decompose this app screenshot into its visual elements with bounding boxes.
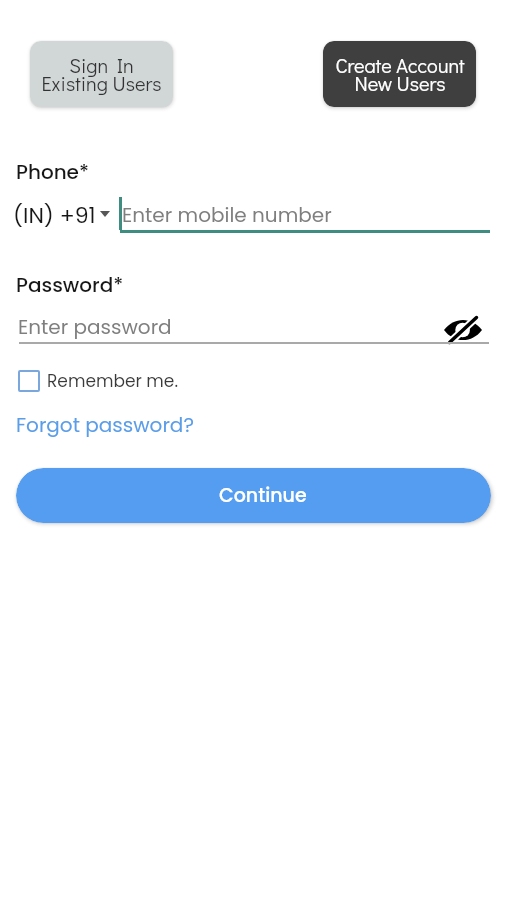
staticText: Sign In Existing Users <box>41 52 162 97</box>
other: Select country code <box>100 211 110 217</box>
button[interactable]: Forgot password? <box>16 411 194 439</box>
staticText: (IN) +91 <box>13 200 96 231</box>
staticText: Password* <box>16 271 124 299</box>
button[interactable]: Create Account New Users <box>323 41 476 107</box>
staticText: Enter password <box>18 313 172 341</box>
button[interactable]: Sign In Existing Users <box>30 41 173 107</box>
staticText: Enter mobile number <box>122 201 332 229</box>
button[interactable]: Continue <box>16 468 491 523</box>
button[interactable]: Show password <box>439 309 487 351</box>
button[interactable]: Remember me. <box>18 369 178 393</box>
staticText: Forgot password? <box>16 411 194 439</box>
staticText: Remember me. <box>47 369 178 393</box>
staticText: Create Account New Users <box>335 52 465 97</box>
staticText: Phone* <box>16 158 90 186</box>
staticText: Continue <box>219 482 307 509</box>
